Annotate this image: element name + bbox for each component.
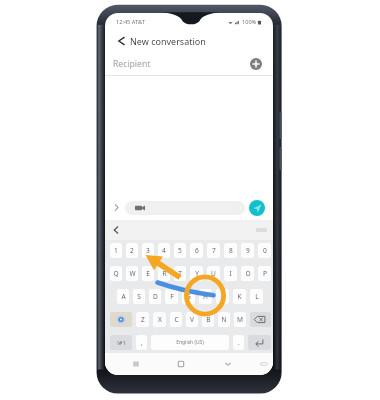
button[interactable]: Enter	[248, 335, 271, 350]
staticText: K	[237, 292, 242, 301]
button[interactable]: Show more options	[110, 201, 123, 214]
staticText: 5	[178, 246, 182, 255]
button[interactable]: V	[186, 312, 198, 327]
staticText: R	[162, 269, 167, 278]
staticText: 1	[114, 246, 118, 255]
staticText: English (US)	[176, 339, 204, 346]
button[interactable]: 0	[258, 243, 271, 258]
button[interactable]: M	[234, 312, 246, 327]
staticText: B	[206, 315, 211, 324]
button[interactable]: A	[117, 289, 129, 304]
button[interactable]: I	[224, 266, 237, 281]
button[interactable]: 8	[224, 243, 237, 258]
button[interactable]: Send	[249, 200, 265, 216]
button[interactable]: Back	[220, 356, 236, 372]
staticText: T	[178, 269, 182, 278]
button[interactable]: 6	[190, 243, 203, 258]
staticText: E	[146, 269, 150, 278]
staticText: M	[237, 315, 243, 324]
staticText: 100%	[242, 18, 257, 26]
staticText: Q	[113, 269, 119, 278]
staticText: S	[137, 292, 141, 301]
staticText: 6	[195, 246, 199, 255]
button[interactable]: T	[174, 266, 186, 281]
button[interactable]: English (US)	[151, 335, 229, 350]
staticText: ,	[141, 338, 143, 347]
staticText: Y	[195, 269, 199, 278]
staticText: .	[238, 338, 240, 347]
button[interactable]: 1	[110, 243, 122, 258]
staticText: L	[255, 292, 259, 301]
button[interactable]: X	[153, 312, 166, 327]
staticText: !#1	[117, 339, 126, 347]
button[interactable]: ,	[136, 335, 147, 350]
staticText: G	[186, 292, 191, 301]
button[interactable]: 3	[142, 243, 154, 258]
button[interactable]: Z	[136, 312, 149, 327]
staticText: X	[158, 315, 162, 324]
button[interactable]: Y	[190, 266, 203, 281]
staticText: 3	[146, 246, 150, 255]
staticText: A	[121, 292, 126, 301]
button[interactable]: .	[233, 335, 244, 350]
button[interactable]: !#1	[110, 335, 132, 350]
button[interactable]: O	[241, 266, 254, 281]
button[interactable]: W	[126, 266, 138, 281]
staticText: 0	[263, 246, 267, 255]
button[interactable]: D	[149, 289, 161, 304]
staticText: W	[129, 269, 136, 278]
button[interactable]: B	[202, 312, 214, 327]
button[interactable]	[125, 201, 245, 215]
staticText: 9	[246, 246, 250, 255]
staticText: F	[170, 292, 174, 301]
staticText: O	[245, 269, 251, 278]
staticText: 8	[229, 246, 233, 255]
staticText: Recipient	[113, 58, 151, 70]
button[interactable]: S	[133, 289, 145, 304]
button[interactable]: 4	[158, 243, 170, 258]
button[interactable]: Shift	[110, 312, 132, 327]
staticText: New conversation	[130, 35, 206, 47]
button[interactable]: Q	[110, 266, 122, 281]
button[interactable]: Recipient	[105, 51, 273, 75]
staticText: 7	[212, 246, 216, 255]
button[interactable]: Add recipient	[247, 55, 265, 73]
button[interactable]: G	[182, 289, 195, 304]
button[interactable]: C	[170, 312, 182, 327]
button[interactable]: K	[233, 289, 246, 304]
button[interactable]: H	[199, 289, 212, 304]
button[interactable]: N	[218, 312, 230, 327]
button[interactable]: U	[207, 266, 220, 281]
button[interactable]: 2	[126, 243, 138, 258]
button[interactable]: L	[250, 289, 263, 304]
button[interactable]: Backspace	[250, 312, 271, 327]
staticText: I	[229, 269, 232, 278]
button[interactable]: Previous	[109, 223, 123, 237]
button[interactable]: J	[216, 289, 229, 304]
staticText: U	[211, 269, 216, 278]
button[interactable]: Back	[111, 31, 131, 51]
button[interactable]: Recents	[128, 356, 144, 372]
staticText: C	[174, 315, 179, 324]
staticText: 2	[130, 246, 134, 255]
button[interactable]: F	[165, 289, 178, 304]
staticText: Z	[141, 315, 145, 324]
staticText: H	[203, 292, 208, 301]
button[interactable]: Hide keyboard	[256, 356, 272, 372]
staticText: 4	[162, 246, 166, 255]
staticText: P	[263, 269, 267, 278]
button[interactable]: R	[158, 266, 170, 281]
staticText: D	[153, 292, 158, 301]
button[interactable]: P	[258, 266, 271, 281]
button[interactable]: Home	[173, 356, 189, 372]
staticText: V	[190, 315, 194, 324]
button[interactable]: E	[142, 266, 154, 281]
button[interactable]: 7	[207, 243, 220, 258]
button[interactable]: 9	[241, 243, 254, 258]
button[interactable]: 5	[174, 243, 186, 258]
staticText: 12:45 AT&T	[116, 18, 145, 26]
staticText: N	[221, 315, 227, 324]
